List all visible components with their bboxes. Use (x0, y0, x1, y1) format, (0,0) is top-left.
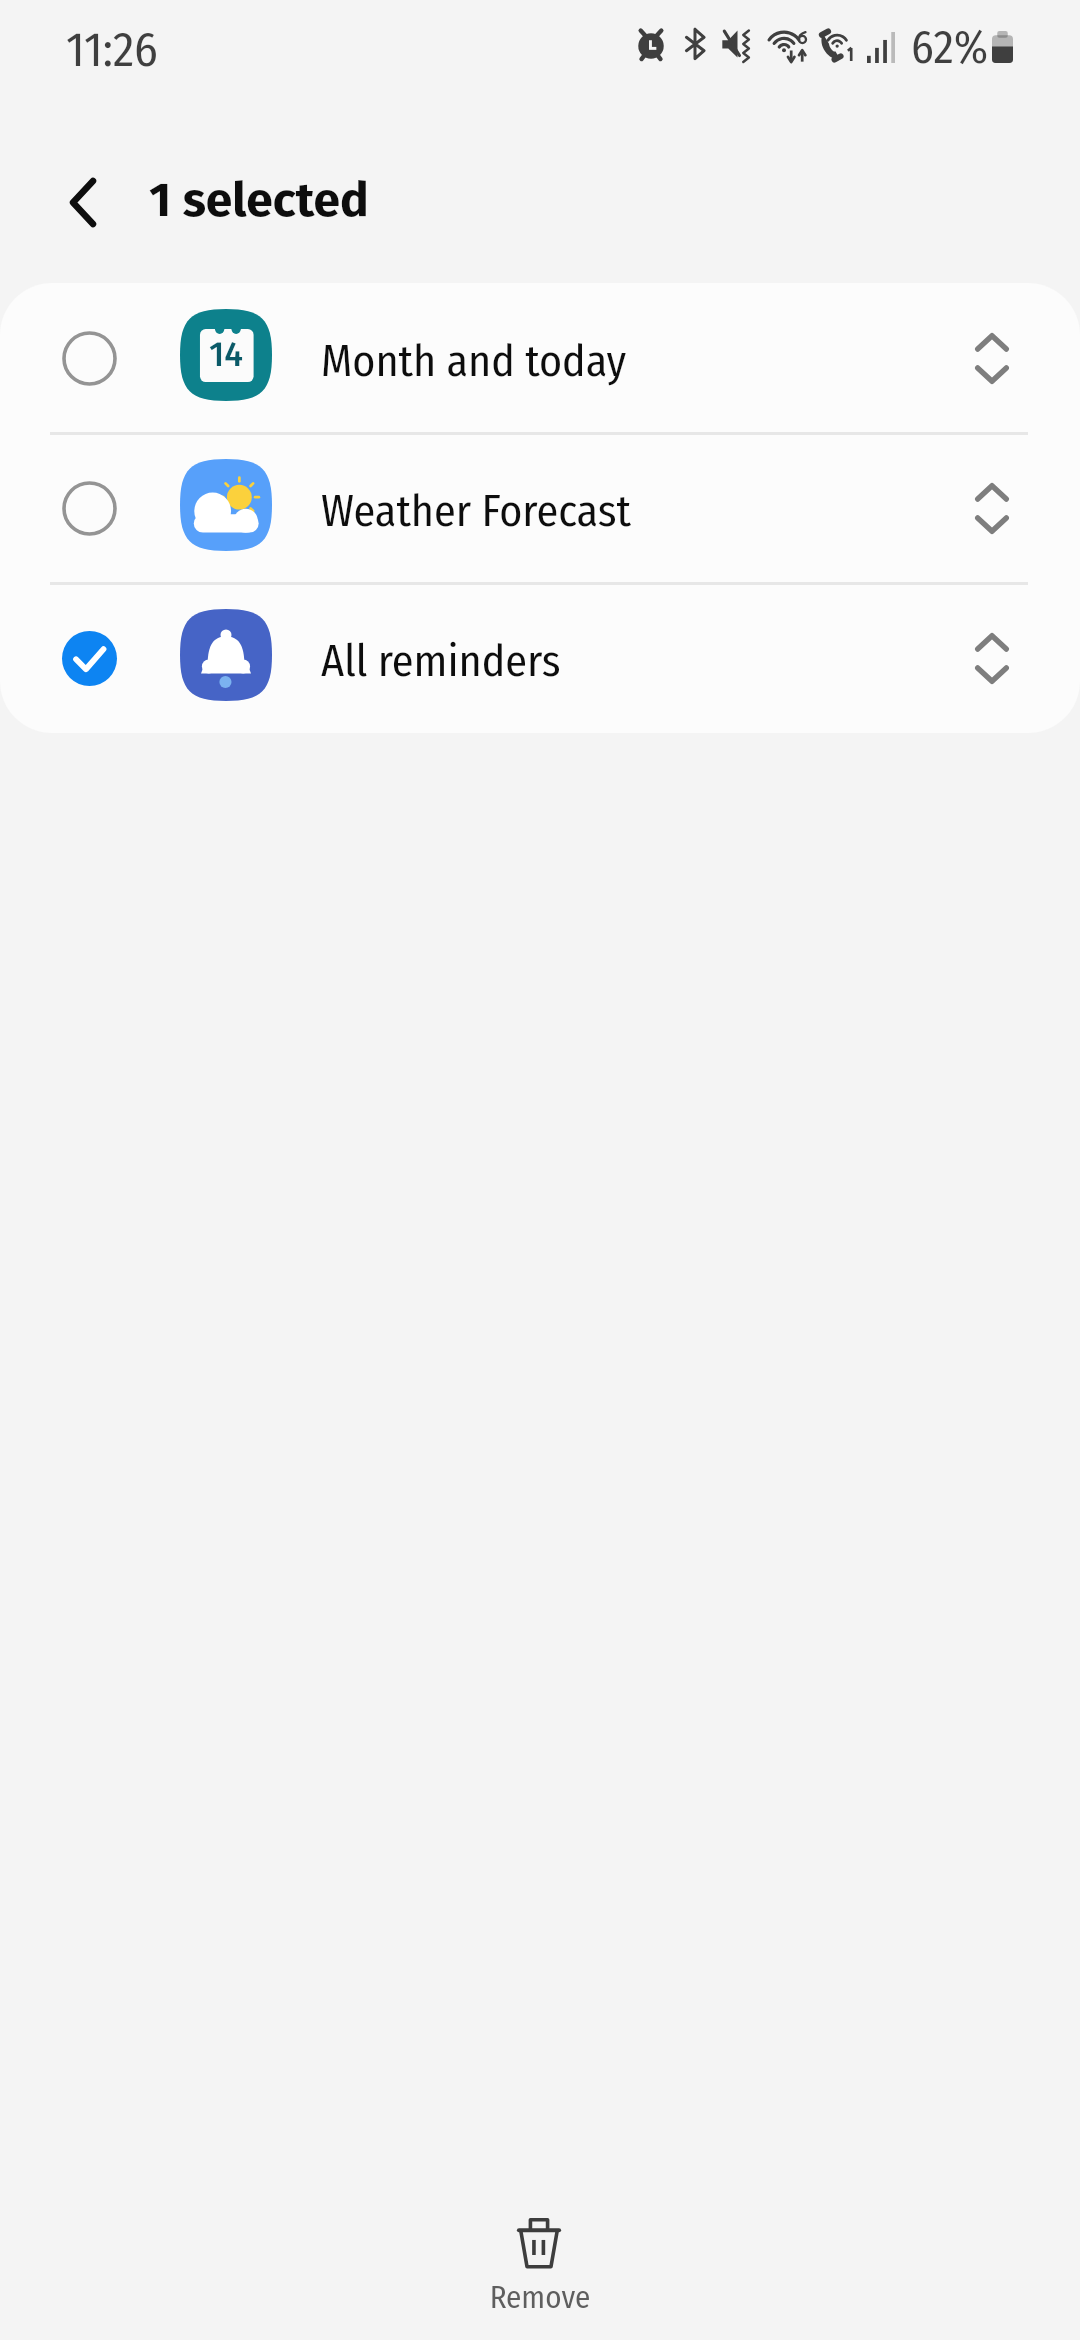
staticText: 14 (180, 334, 272, 375)
staticText: 11:26 (66, 21, 158, 79)
button[interactable]: Not selected (0, 433, 178, 583)
button[interactable]: Not selected (0, 283, 1080, 433)
button[interactable]: Not selected (0, 433, 1080, 583)
button[interactable]: Back (43, 162, 123, 242)
staticText: All reminders (321, 635, 561, 688)
button[interactable]: Selected (0, 583, 1080, 733)
button[interactable]: Not selected (0, 283, 178, 433)
button[interactable]: Reorder (930, 583, 1054, 733)
button[interactable]: Reorder (930, 433, 1054, 583)
button[interactable]: Reorder (930, 283, 1054, 433)
button[interactable]: Remove (400, 2190, 680, 2330)
staticText: Month and today (321, 335, 627, 388)
staticText: Remove (400, 2279, 680, 2316)
button[interactable]: Selected (0, 583, 178, 733)
staticText: 1 selected (149, 171, 369, 229)
staticText: Weather Forecast (321, 485, 631, 538)
staticText: 62% (911, 20, 989, 75)
